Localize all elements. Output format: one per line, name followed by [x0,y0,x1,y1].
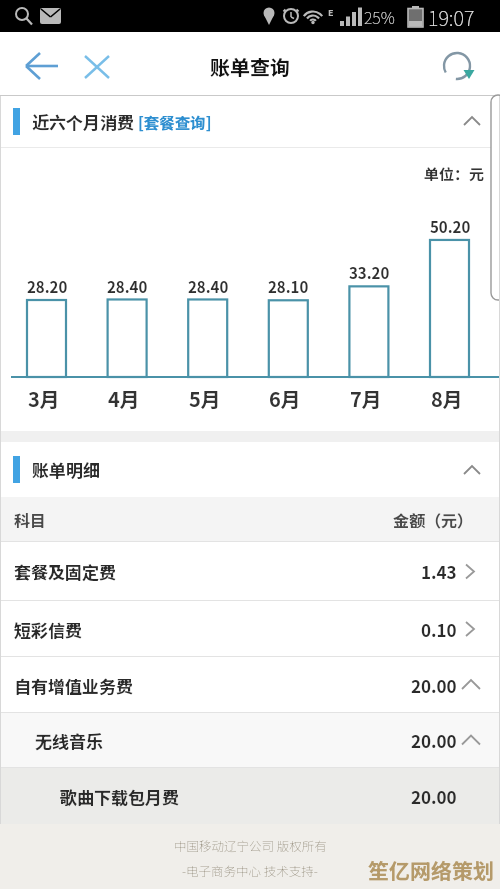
staticText: 单位：元 [424,163,485,185]
staticText: 25% [364,5,395,28]
staticText: 无线音乐 [35,728,103,753]
staticText: 5月 [189,384,221,413]
staticText: 33.20 [349,262,390,284]
staticText: -电子商务中心 技术支持- [182,861,318,879]
staticText: 笙亿网络策划 [368,855,494,885]
button[interactable] [76,47,118,89]
staticText: 8月 [431,384,463,413]
staticText: 28.10 [268,276,309,298]
button[interactable]: 歌曲下载包月费 [0,768,500,824]
staticText: 20.00 [411,784,457,809]
staticText: 短彩信费 [14,617,82,642]
staticText: 3月 [28,384,60,413]
staticText: 自有增值业务费 [14,673,133,698]
staticText: 科目 [14,508,47,531]
staticText: 19:07 [428,3,475,32]
staticText: 账单查询 [210,52,290,81]
staticText: 28.20 [27,276,68,298]
staticText: 金额（元） [393,508,474,531]
button[interactable] [14,42,62,88]
staticText: 4月 [108,384,140,413]
staticText: 7月 [350,384,382,413]
staticText: 近六个月消费 [32,109,138,134]
staticText: 套餐及固定费 [14,559,116,584]
button[interactable]: 自有增值业务费 [0,657,500,713]
staticText: 28.40 [188,276,229,298]
button[interactable]: 套餐及固定费 [0,542,500,601]
staticText: 20.00 [411,728,457,753]
button[interactable] [434,44,480,86]
staticText: 6月 [269,384,301,413]
staticText: 歌曲下载包月费 [60,784,179,809]
staticText: 中国移动辽宁公司 版权所有 [174,836,327,854]
staticText: 账单明细 [32,457,100,482]
staticText: [套餐查询] [138,111,212,133]
button[interactable]: 无线音乐 [0,713,500,768]
staticText: 1.43 [421,559,457,584]
staticText: E [328,6,334,19]
staticText: 50.20 [430,216,471,238]
button[interactable]: 近六个月消费 [0,96,500,147]
button[interactable]: 账单明细 [0,442,500,497]
button[interactable]: 短彩信费 [0,601,500,657]
staticText: 20.00 [411,673,457,698]
staticText: 0.10 [421,617,457,642]
staticText: 28.40 [107,276,148,298]
